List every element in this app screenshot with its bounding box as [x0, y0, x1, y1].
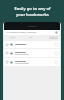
button[interactable]: Select item	[4, 58, 60, 66]
button[interactable]: More options	[55, 52, 58, 55]
staticText: All Channels (Default, Docking)	[6, 31, 55, 34]
button[interactable]: Filter	[55, 31, 58, 34]
staticText: Easily go to any of	[14, 6, 51, 12]
button[interactable]: More options	[55, 61, 58, 64]
button[interactable]: Select item	[4, 41, 60, 48]
staticText: Name	[10, 36, 29, 39]
staticText: your bookmarks	[16, 12, 49, 18]
button[interactable]: Date/Last	[42, 36, 58, 39]
button[interactable]: All Channels (Default, Docking)	[4, 30, 60, 35]
staticText: Date/Last	[50, 37, 58, 39]
button[interactable]: Select item	[4, 49, 60, 57]
staticText: Size	[29, 36, 42, 39]
button[interactable]: More options	[55, 43, 58, 46]
